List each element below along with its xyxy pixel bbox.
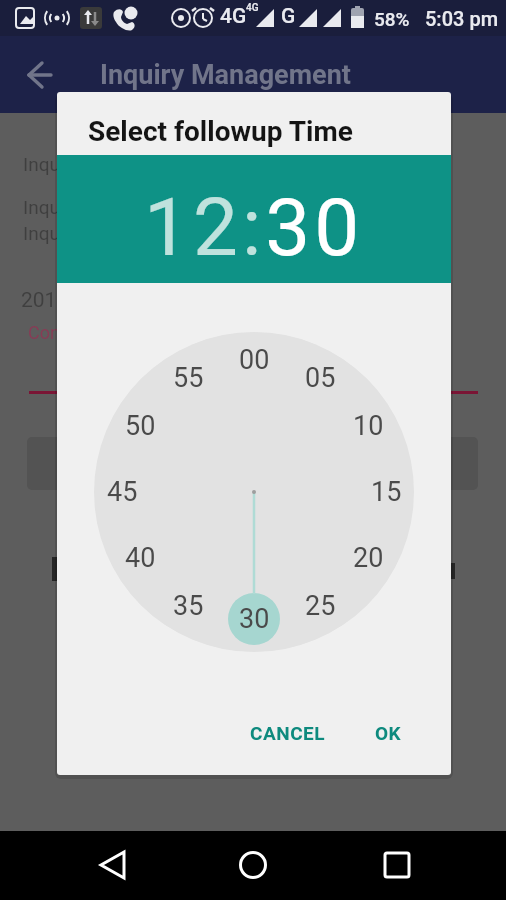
staticText: Inquiry Management [100,59,351,91]
staticText: Inquiry Type [23,153,125,175]
button[interactable] [0,831,168,900]
staticText: 55 [173,362,204,394]
staticText: 5:03 pm [425,7,499,30]
staticText: CANCEL [250,722,326,744]
button[interactable] [147,175,242,265]
staticText: 4G [246,2,259,14]
staticText: Inquiry Person [23,196,145,218]
button[interactable] [94,332,414,652]
staticText: Select followup Time [88,115,353,148]
staticText: 20 [353,542,384,574]
staticText: 40 [125,542,156,574]
staticText: Contact No [28,322,119,343]
staticText: 25 [305,590,336,622]
button[interactable] [168,831,337,900]
staticText: 4G [220,4,247,29]
staticText: 10 [353,410,384,442]
staticText: 35 [173,590,204,622]
staticText: 12:30 [144,181,364,275]
staticText: 50 [125,410,156,442]
button[interactable] [337,831,506,900]
staticText: 58% [374,8,410,30]
button[interactable] [26,61,56,91]
button[interactable] [267,175,362,265]
staticText: G [281,4,296,29]
staticText: 30 [239,603,270,635]
staticText: 05 [305,362,336,394]
staticText: OK [375,722,402,744]
staticText: 2017-08-12 05:02:47 [21,288,214,313]
staticText: 15 [371,476,402,508]
staticText: 45 [107,476,138,508]
staticText: 00 [239,344,270,376]
button[interactable] [27,437,478,490]
button[interactable]: OK [358,717,418,749]
staticText: Inquiry Details [23,222,144,244]
button[interactable]: CANCEL [240,717,336,749]
